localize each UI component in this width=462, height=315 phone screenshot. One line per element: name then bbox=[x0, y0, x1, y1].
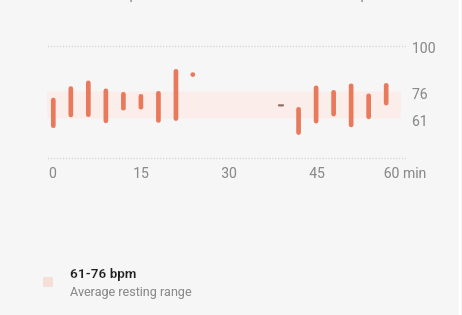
staticText: Average resting range bbox=[70, 284, 192, 299]
button[interactable]: Heart rate chart, average resting range … bbox=[0, 0, 462, 315]
staticText: 61 bbox=[412, 113, 428, 129]
staticText: 60 min bbox=[365, 165, 445, 181]
staticText: 45 bbox=[277, 165, 357, 181]
staticText: 100 bbox=[412, 40, 436, 56]
staticText: 30 bbox=[189, 165, 269, 181]
staticText: 0 bbox=[13, 165, 93, 181]
staticText: 76 bbox=[412, 86, 428, 102]
staticText: 61 bpm bbox=[317, 0, 397, 2]
button[interactable]: 61-76 bpm bbox=[31, 263, 153, 297]
staticText: 15 bbox=[101, 165, 181, 181]
staticText: 61-76 bpm bbox=[70, 265, 137, 281]
staticText: 72 bpm bbox=[86, 0, 166, 2]
